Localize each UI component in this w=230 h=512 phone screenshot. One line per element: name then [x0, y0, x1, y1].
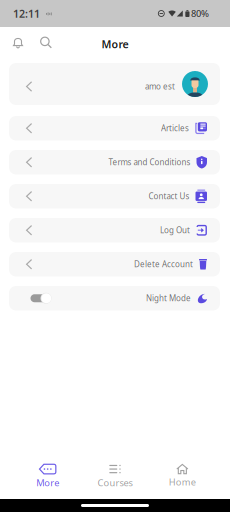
- staticText: Log Out: [160, 225, 190, 235]
- button[interactable]: amo est: [9, 63, 220, 105]
- button[interactable]: Contact Us: [9, 184, 220, 208]
- button[interactable]: Home: [149, 464, 216, 488]
- staticText: Courses: [97, 477, 132, 489]
- staticText: Articles: [161, 123, 189, 133]
- button[interactable]: Terms and Conditions: [9, 150, 220, 174]
- button[interactable]: Delete Account: [9, 252, 220, 276]
- staticText: amo est: [145, 81, 175, 92]
- staticText: 12:11: [13, 6, 40, 21]
- staticText: Terms and Conditions: [108, 157, 190, 167]
- staticText: More: [101, 37, 128, 51]
- staticText: Delete Account: [134, 259, 193, 269]
- staticText: Night Mode: [146, 293, 191, 303]
- staticText: Contact Us: [148, 191, 189, 201]
- button[interactable]: Articles: [9, 116, 220, 140]
- button[interactable]: Log Out: [9, 218, 220, 242]
- staticText: Home: [169, 476, 196, 488]
- staticText: More: [36, 477, 59, 489]
- button[interactable]: Search: [36, 32, 56, 52]
- button[interactable]: Night Mode: [9, 286, 220, 310]
- staticText: 80%: [191, 7, 209, 20]
- button[interactable]: More: [14, 463, 81, 489]
- button[interactable]: Courses: [81, 463, 149, 489]
- button[interactable]: Notifications: [8, 32, 28, 52]
